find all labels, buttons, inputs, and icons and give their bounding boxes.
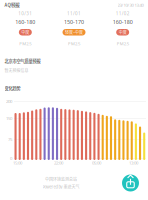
button[interactable]: Share (122, 174, 139, 191)
staticText: AQI预报 (4, 2, 19, 8)
staticText: 中国环境监测总站 (45, 176, 77, 182)
staticText: 150 (6, 115, 12, 121)
staticText: 暂无预报信息 (4, 68, 28, 73)
staticText: 150-170 (64, 18, 84, 26)
staticText: 13:00 (129, 160, 138, 166)
staticText: 15:00 (13, 160, 22, 166)
staticText: 11/01 (67, 10, 81, 17)
staticText: 10/31 (18, 10, 32, 17)
staticText: 0 (10, 155, 12, 161)
staticText: 轻度~中度 (65, 29, 83, 35)
staticText: 160-180 (15, 18, 35, 26)
staticText: Powered by 墨迹天气 (42, 184, 79, 190)
staticText: 11/02 (116, 10, 130, 17)
staticText: PM2.5 (117, 41, 129, 46)
staticText: 北京市空气质量预报 (4, 58, 40, 64)
staticText: 23/10/30 13:40 (117, 2, 143, 8)
staticText: 中度 (21, 29, 29, 35)
staticText: 中度 (119, 29, 127, 35)
staticText: 200 (6, 98, 12, 104)
staticText: PM2.5 (19, 41, 31, 46)
staticText: 变化趋势 (4, 85, 20, 91)
staticText: 75 (8, 136, 12, 142)
staticText: 160-180 (113, 18, 133, 26)
staticText: 22:00 (54, 160, 63, 166)
staticText: PM2.5 (68, 41, 80, 46)
staticText: 05:00 (92, 160, 101, 166)
